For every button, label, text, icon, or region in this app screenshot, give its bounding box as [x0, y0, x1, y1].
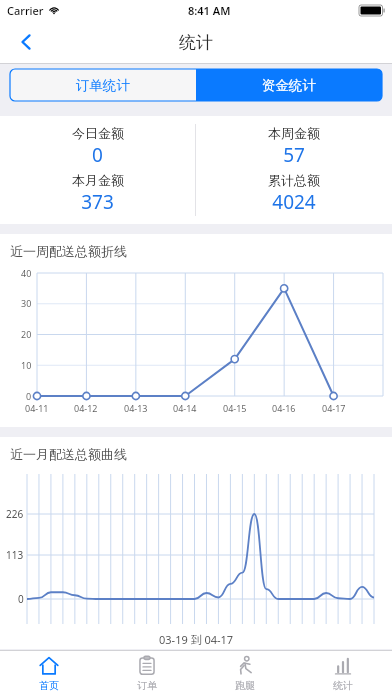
staticText: 累计总额: [268, 172, 320, 188]
staticText: 订单统计: [76, 77, 130, 94]
staticText: 统计: [179, 32, 213, 53]
staticText: 本周金额: [268, 125, 320, 141]
staticText: 04-17: [322, 402, 346, 414]
staticText: 本月金额: [72, 172, 124, 188]
staticText: 04-16: [272, 402, 296, 414]
button[interactable]: 首页: [0, 651, 98, 696]
staticText: 226: [6, 507, 24, 521]
staticText: 30: [21, 297, 32, 309]
staticText: 03-19 到 04-17: [159, 632, 234, 647]
staticText: 近一月配送总额曲线: [10, 446, 127, 462]
staticText: 04-12: [74, 402, 98, 414]
button[interactable]: 统计: [294, 651, 392, 696]
staticText: 近一周配送总额折线: [10, 243, 127, 259]
button[interactable]: 订单: [98, 651, 196, 696]
staticText: 113: [6, 548, 24, 562]
button[interactable]: Back: [0, 20, 52, 64]
staticText: 订单: [137, 679, 157, 692]
staticText: 04-15: [223, 402, 247, 414]
staticText: 今日金额: [72, 125, 124, 141]
staticText: Carrier: [7, 3, 44, 18]
staticText: 04-11: [25, 402, 49, 414]
staticText: 统计: [333, 679, 353, 692]
staticText: 资金统计: [262, 77, 316, 94]
staticText: 04-14: [173, 402, 197, 414]
staticText: 40: [21, 267, 32, 279]
button[interactable]: 跑腿: [196, 651, 294, 696]
staticText: 04-13: [124, 402, 148, 414]
staticText: 20: [21, 328, 32, 340]
staticText: 0: [92, 142, 103, 168]
staticText: 8:41 AM: [188, 3, 231, 18]
staticText: 10: [21, 359, 32, 371]
button[interactable]: 订单统计: [10, 69, 196, 101]
staticText: 0: [18, 592, 24, 606]
staticText: 跑腿: [235, 679, 255, 692]
staticText: 首页: [39, 679, 59, 692]
staticText: 0: [26, 390, 32, 402]
staticText: 4024: [272, 189, 316, 215]
staticText: 57: [283, 142, 305, 168]
staticText: 373: [81, 189, 114, 215]
button[interactable]: 资金统计: [196, 69, 382, 101]
